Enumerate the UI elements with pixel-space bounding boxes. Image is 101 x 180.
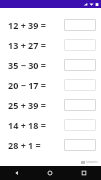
staticText: answers — [86, 160, 98, 164]
button[interactable]: Answer field 6 — [64, 119, 96, 131]
button[interactable]: Recents — [67, 166, 101, 180]
staticText: 28 + 1 = — [8, 139, 41, 151]
button[interactable]: Answer field 7 — [64, 139, 96, 151]
button[interactable]: Home — [33, 166, 67, 180]
button[interactable]: 20 − 17 = — [0, 75, 101, 95]
button[interactable]: 25 + 39 = — [0, 95, 101, 115]
button[interactable]: Answer field 4 — [64, 79, 96, 91]
button[interactable]: Back — [0, 166, 33, 180]
button[interactable]: Answer field 5 — [64, 99, 96, 111]
staticText: 25 + 39 = — [8, 99, 46, 111]
button[interactable]: 35 − 30 = — [0, 55, 101, 75]
button[interactable]: 14 + 18 = — [0, 115, 101, 135]
staticText: 14 + 18 = — [8, 119, 46, 131]
staticText: 20 − 17 = — [8, 79, 46, 91]
button[interactable]: 13 + 27 = — [0, 35, 101, 55]
button[interactable]: 28 + 1 = — [0, 135, 101, 155]
staticText: 13 + 27 = — [8, 39, 46, 51]
button[interactable]: Answer field 1 — [64, 19, 96, 31]
button[interactable]: Answer field 3 — [64, 59, 96, 71]
staticText: 35 − 30 = — [8, 59, 46, 71]
button[interactable]: 12 + 39 = — [0, 15, 101, 35]
staticText: 12 + 39 = — [8, 19, 46, 31]
button[interactable]: Answer field 2 — [64, 39, 96, 51]
